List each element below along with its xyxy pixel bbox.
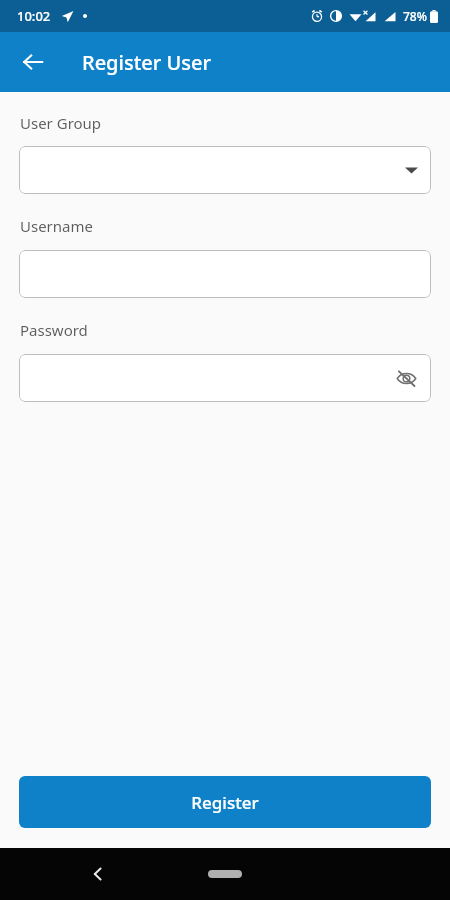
button[interactable]: Show password <box>389 361 423 395</box>
staticText: 78% <box>403 8 427 24</box>
button[interactable] <box>19 146 431 194</box>
button[interactable]: Show password <box>19 354 431 402</box>
button[interactable]: Register <box>19 776 431 828</box>
staticText: User Group <box>20 113 102 133</box>
staticText: Password <box>20 320 88 340</box>
button[interactable]: Back <box>13 42 53 82</box>
staticText: Username <box>20 216 93 236</box>
staticText: Register User <box>82 49 211 76</box>
button[interactable]: Back <box>78 854 118 894</box>
staticText: 10:02 <box>17 7 51 25</box>
button[interactable]: Home <box>202 862 248 886</box>
button[interactable] <box>19 250 431 298</box>
staticText: Register <box>191 791 259 814</box>
